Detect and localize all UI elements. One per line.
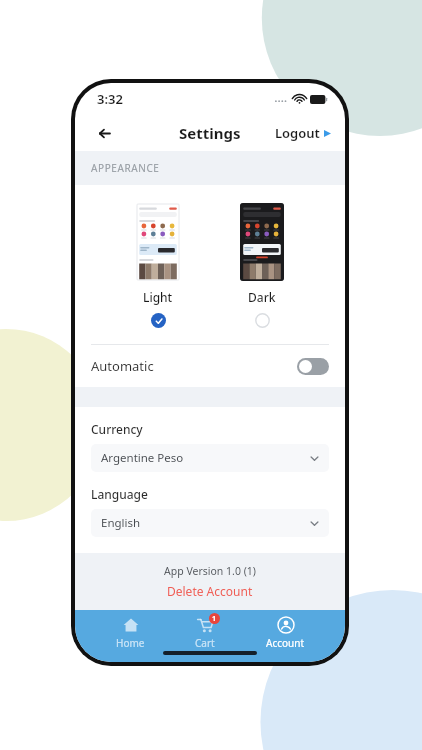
button[interactable]: Argentine Peso xyxy=(91,444,329,472)
button[interactable]: Light xyxy=(136,203,180,328)
staticText: App Version 1.0 (1) xyxy=(75,564,345,578)
staticText: Logout xyxy=(275,124,320,142)
staticText: Delete Account xyxy=(167,583,253,599)
staticText: APPEARANCE xyxy=(91,161,160,175)
staticText: Argentine Peso xyxy=(101,450,184,466)
staticText: Cart xyxy=(195,636,215,650)
staticText: Dark xyxy=(248,289,276,305)
staticText: English xyxy=(101,515,141,531)
staticText: Settings xyxy=(179,123,241,143)
staticText: 1 xyxy=(212,614,217,624)
button[interactable]: Account xyxy=(256,617,315,650)
button[interactable]: 1 xyxy=(185,617,225,650)
button[interactable]: Dark xyxy=(240,203,284,328)
staticText: Light xyxy=(143,289,173,305)
button[interactable]: Delete Account xyxy=(167,583,253,599)
staticText: 3:32 xyxy=(97,90,123,108)
staticText: Language xyxy=(91,486,148,502)
staticText: Home xyxy=(116,636,145,650)
staticText: Currency xyxy=(91,421,143,437)
staticText: Automatic xyxy=(91,357,154,375)
button[interactable]: English xyxy=(91,509,329,537)
button[interactable]: Back xyxy=(92,121,117,146)
button[interactable]: Home xyxy=(106,617,155,650)
staticText: Account xyxy=(266,636,305,650)
button[interactable]: Logout xyxy=(275,124,331,142)
button[interactable]: Automatic xyxy=(75,345,345,387)
